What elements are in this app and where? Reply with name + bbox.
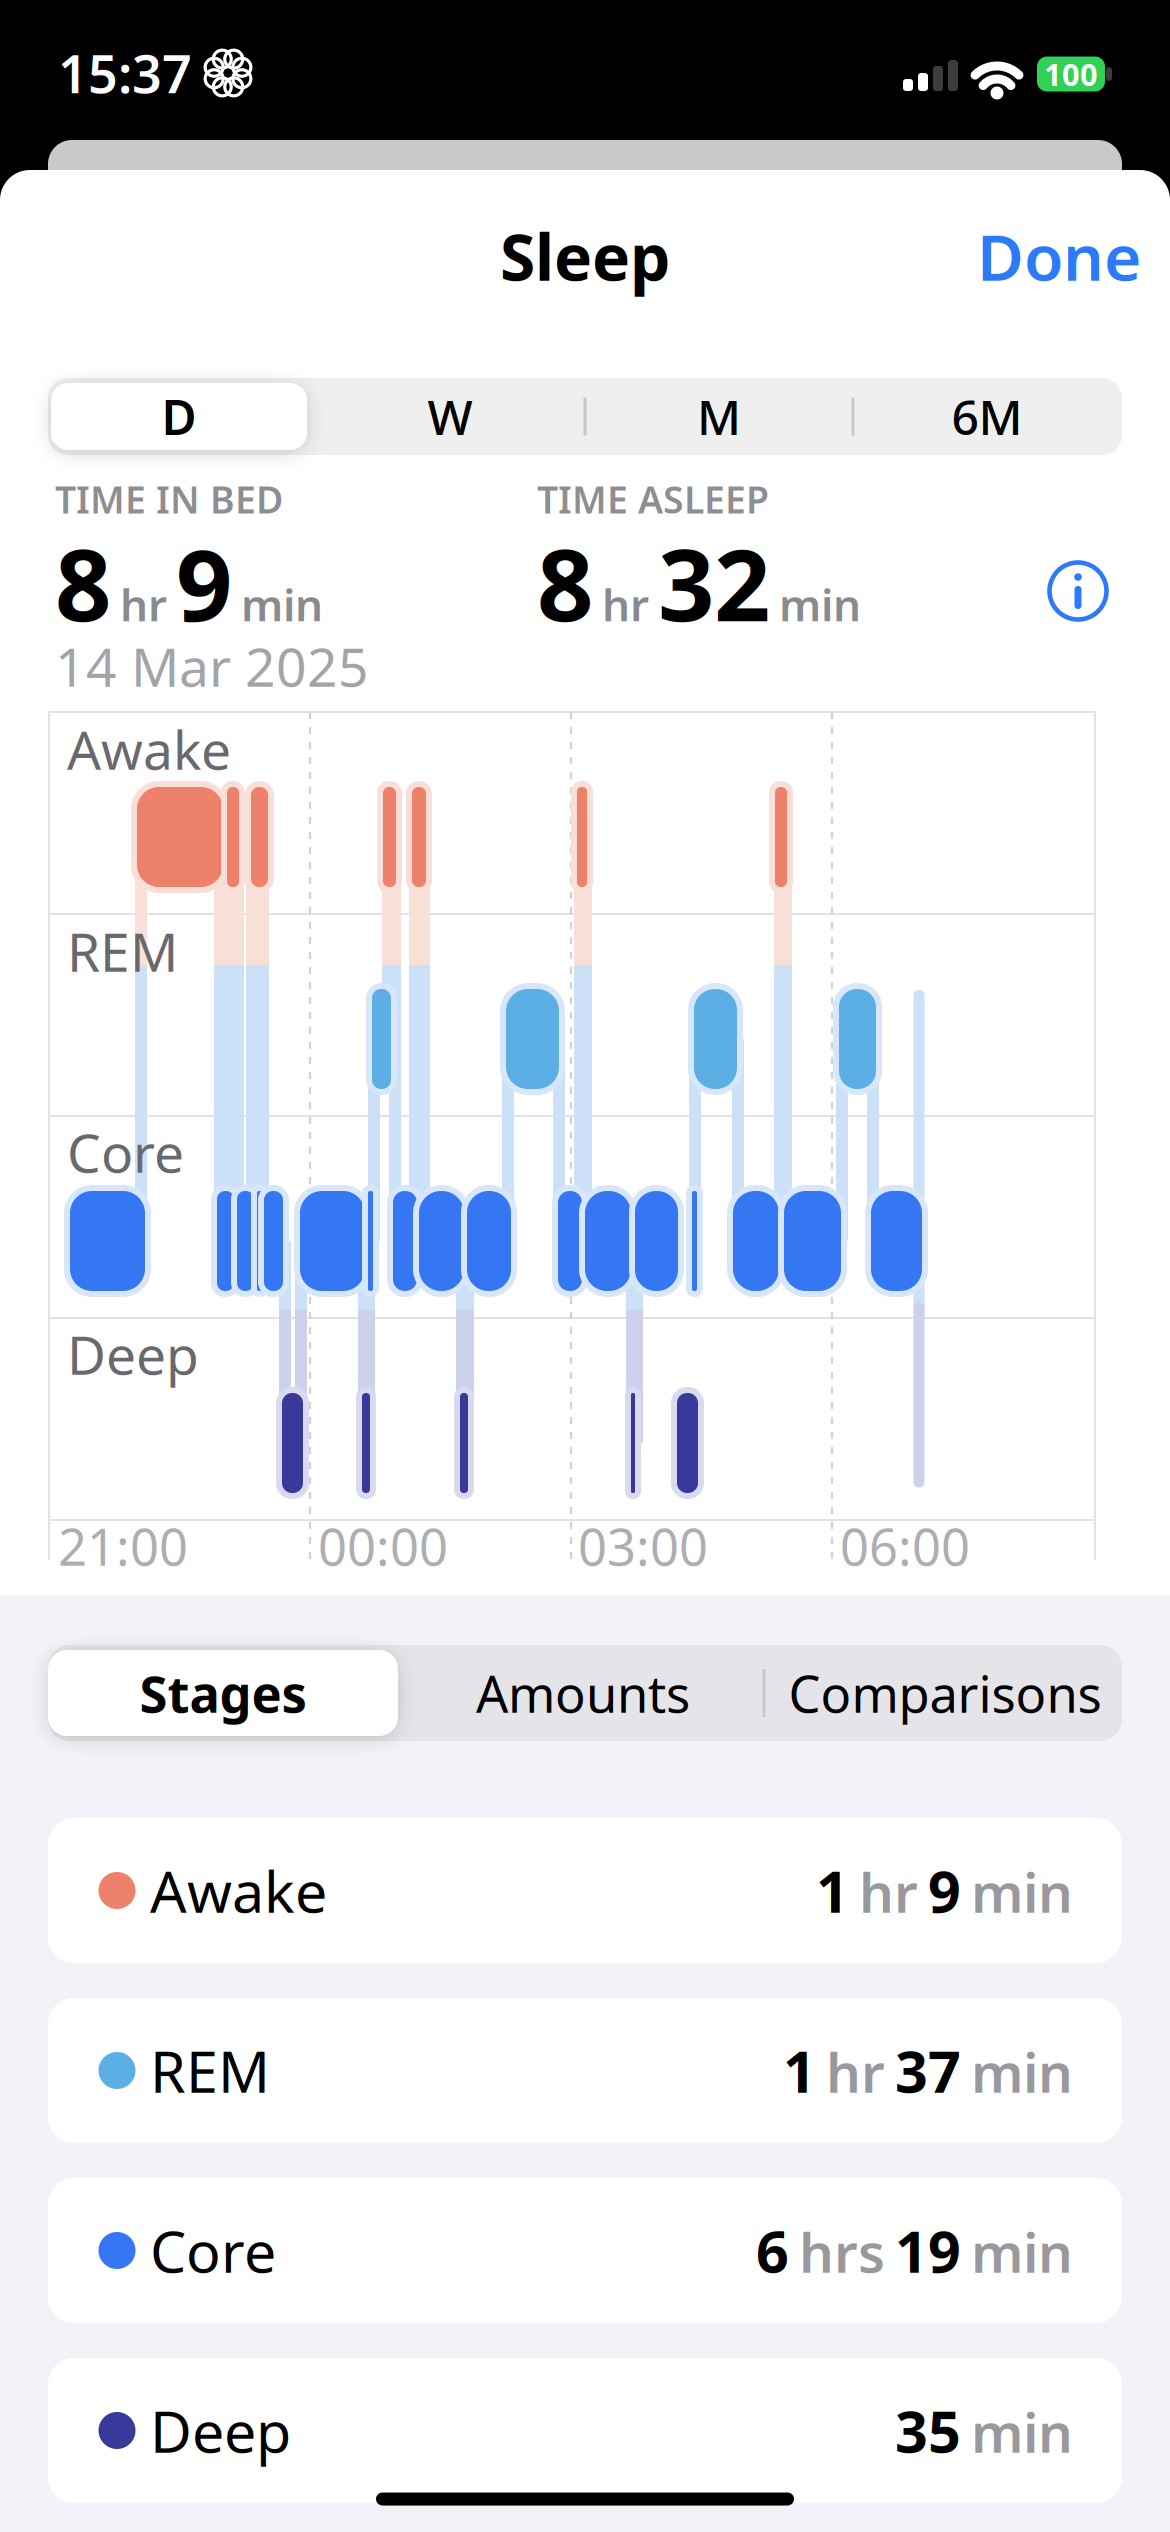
staticText: 21:00 bbox=[58, 1512, 188, 1580]
staticText: min bbox=[241, 575, 323, 633]
staticText: 19 bbox=[895, 2212, 961, 2288]
staticText: hr bbox=[602, 575, 649, 633]
staticText: min bbox=[779, 575, 861, 633]
staticText: TIME IN BED bbox=[55, 474, 283, 524]
staticText: 14 Mar 2025 bbox=[55, 631, 369, 701]
staticText: min bbox=[971, 2395, 1073, 2468]
staticText: Stages bbox=[139, 1659, 306, 1727]
staticText: Amounts bbox=[476, 1659, 690, 1727]
staticText: Core bbox=[150, 2212, 276, 2288]
button[interactable]: Done bbox=[977, 213, 1141, 298]
staticText: 6M bbox=[951, 385, 1022, 448]
staticText: Done bbox=[977, 213, 1141, 298]
staticText: Awake bbox=[67, 714, 231, 784]
button[interactable]: W bbox=[322, 383, 578, 450]
staticText: 8 bbox=[537, 517, 593, 648]
staticText: 1 bbox=[783, 2032, 816, 2108]
staticText: 1 bbox=[816, 1852, 849, 1928]
staticText: REM bbox=[150, 2032, 270, 2108]
staticText: min bbox=[971, 2215, 1073, 2288]
staticText: REM bbox=[67, 916, 178, 986]
staticText: 100 bbox=[1044, 54, 1098, 94]
staticText: D bbox=[161, 385, 196, 448]
button[interactable]: Stages bbox=[48, 1650, 398, 1736]
staticText: 37 bbox=[895, 2032, 961, 2108]
staticText: hrs bbox=[799, 2215, 885, 2288]
staticText: W bbox=[427, 385, 472, 448]
staticText: Deep bbox=[67, 1319, 199, 1389]
button[interactable]: More information bbox=[1047, 560, 1109, 622]
staticText: min bbox=[971, 2035, 1073, 2108]
staticText: hr bbox=[120, 575, 167, 633]
button[interactable]: Amounts bbox=[408, 1650, 758, 1736]
staticText: hr bbox=[826, 2035, 885, 2108]
staticText: 15:37 bbox=[58, 38, 192, 108]
staticText: 9 bbox=[928, 1852, 961, 1928]
staticText: Deep bbox=[150, 2392, 291, 2468]
staticText: M bbox=[697, 385, 741, 448]
button[interactable]: D bbox=[51, 383, 307, 450]
button[interactable]: Comparisons bbox=[770, 1650, 1120, 1736]
staticText: Awake bbox=[150, 1852, 327, 1928]
staticText: 00:00 bbox=[318, 1512, 448, 1580]
staticText: 35 bbox=[895, 2392, 961, 2468]
staticText: 06:00 bbox=[840, 1512, 970, 1580]
staticText: hr bbox=[859, 1855, 918, 1928]
staticText: min bbox=[971, 1855, 1073, 1928]
staticText: 32 bbox=[658, 517, 770, 648]
button[interactable]: 6M bbox=[859, 383, 1115, 450]
staticText: Comparisons bbox=[788, 1659, 1101, 1727]
staticText: TIME ASLEEP bbox=[537, 474, 769, 524]
button[interactable]: M bbox=[591, 383, 847, 450]
staticText: 03:00 bbox=[578, 1512, 708, 1580]
staticText: Core bbox=[67, 1117, 184, 1187]
staticText: 8 bbox=[55, 517, 111, 648]
staticText: 6 bbox=[756, 2212, 789, 2288]
staticText: Sleep bbox=[500, 213, 670, 298]
staticText: 9 bbox=[176, 517, 232, 648]
